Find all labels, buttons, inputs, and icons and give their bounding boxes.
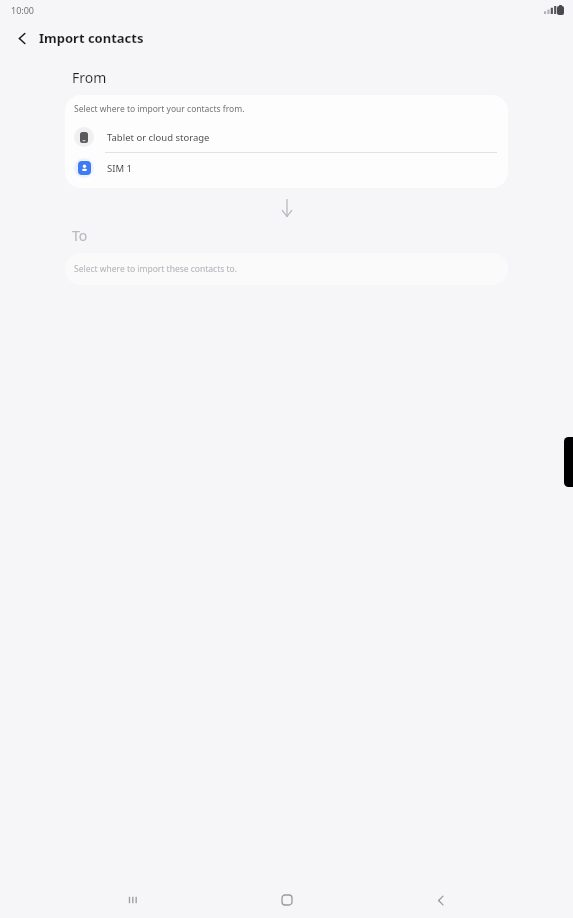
button[interactable]: Tablet or cloud storage [65, 122, 508, 153]
staticText: Import contacts [39, 29, 144, 47]
staticText: Select where to import these contacts to… [74, 263, 238, 275]
staticText: From [72, 68, 107, 87]
staticText: SIM 1 [107, 162, 132, 175]
button[interactable]: Back [419, 882, 463, 918]
button[interactable]: Recent apps [111, 882, 155, 918]
staticText: 10:00 [11, 4, 35, 16]
staticText: Select where to import your contacts fro… [74, 103, 245, 115]
staticText: Tablet or cloud storage [107, 131, 210, 144]
button[interactable]: SIM 1 [65, 153, 508, 183]
button[interactable]: Back [9, 25, 35, 51]
button[interactable]: Select where to import these contacts to… [65, 253, 508, 285]
staticText: To [72, 226, 88, 245]
button[interactable]: Home [265, 882, 309, 918]
